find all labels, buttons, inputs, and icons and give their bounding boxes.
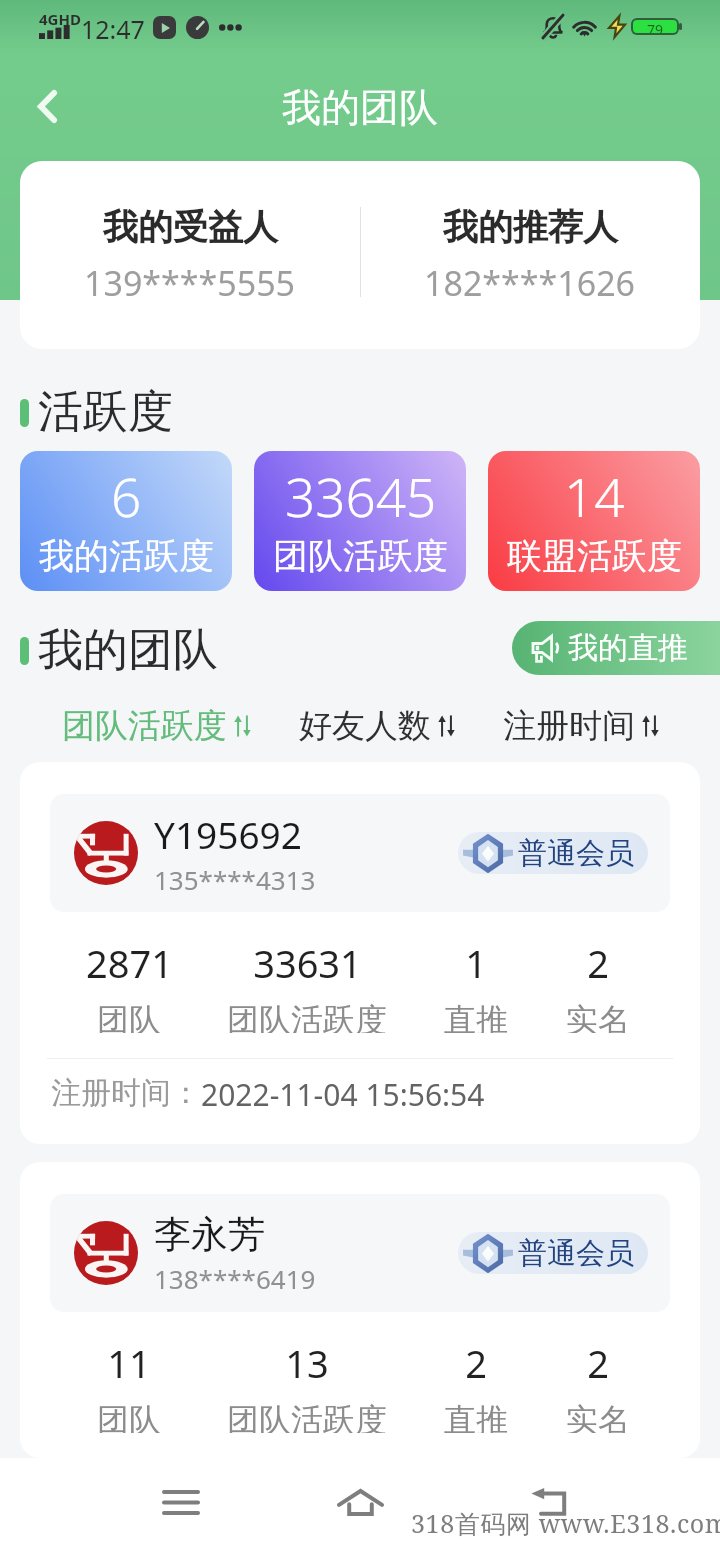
staticText: 普通会员	[518, 835, 634, 872]
button[interactable]: 李永芳	[20, 1162, 700, 1458]
staticText: 139****5555	[84, 260, 296, 306]
staticText: 33645	[285, 460, 437, 532]
staticText: 14	[564, 460, 625, 532]
staticText: 11	[107, 1337, 151, 1389]
staticText: 2	[587, 1337, 609, 1389]
button[interactable]: Back	[520, 1480, 578, 1524]
staticText: 注册时间	[503, 705, 635, 747]
staticText: 4GHD	[39, 9, 81, 29]
staticText: 普通会员	[518, 1235, 634, 1272]
staticText: 2871	[86, 937, 173, 989]
staticText: 我的直推	[568, 629, 688, 667]
staticText: 我的团队	[38, 622, 218, 679]
staticText: 直推	[444, 1000, 508, 1033]
staticText: 我的推荐人	[443, 205, 618, 249]
button[interactable]: 好友人数	[299, 697, 455, 755]
staticText: 我的团队	[0, 83, 720, 132]
staticText: 注册时间：	[51, 1074, 201, 1112]
button[interactable]: 33645	[254, 451, 466, 591]
staticText: 318首码网 www.E318.com	[411, 1506, 720, 1540]
staticText: 联盟活跃度	[507, 534, 682, 578]
staticText: 团队活跃度	[227, 1400, 387, 1433]
staticText: 13	[285, 1337, 329, 1389]
staticText: 李永芳	[154, 1211, 265, 1258]
button[interactable]: 注册时间	[503, 697, 659, 755]
staticText: Y195692	[154, 809, 302, 859]
staticText: 135****4313	[154, 862, 316, 897]
button[interactable]: Back	[23, 82, 71, 130]
staticText: 1	[465, 937, 487, 989]
staticText: 2022-11-04 15:56:54	[201, 1074, 485, 1115]
staticText: 团队活跃度	[62, 705, 227, 747]
staticText: 团队	[97, 1400, 161, 1433]
staticText: 直推	[444, 1400, 508, 1433]
button[interactable]: 我的直推	[512, 621, 720, 675]
staticText: 我的活跃度	[39, 534, 214, 578]
staticText: 182****1626	[424, 260, 636, 306]
staticText: 2	[465, 1337, 487, 1389]
staticText: 好友人数	[299, 705, 431, 747]
button[interactable]: 团队活跃度	[62, 697, 251, 755]
button[interactable]: Home	[331, 1480, 389, 1524]
staticText: 团队	[97, 1000, 161, 1033]
button[interactable]: Y195692	[20, 762, 700, 1144]
staticText: 12:47	[81, 12, 145, 46]
button[interactable]: Menu	[152, 1480, 210, 1524]
staticText: 我的受益人	[103, 205, 278, 249]
staticText: 团队活跃度	[273, 534, 448, 578]
staticText: 6	[111, 460, 142, 532]
staticText: 2	[587, 937, 609, 989]
staticText: 138****6419	[154, 1261, 316, 1296]
staticText: 33631	[253, 937, 362, 989]
staticText: 实名	[566, 1000, 630, 1033]
staticText: 活跃度	[38, 384, 173, 441]
button[interactable]: 6	[20, 451, 232, 591]
staticText: 实名	[566, 1400, 630, 1433]
button[interactable]: 14	[488, 451, 700, 591]
staticText: 团队活跃度	[227, 1000, 387, 1033]
staticText: 79	[647, 20, 664, 33]
